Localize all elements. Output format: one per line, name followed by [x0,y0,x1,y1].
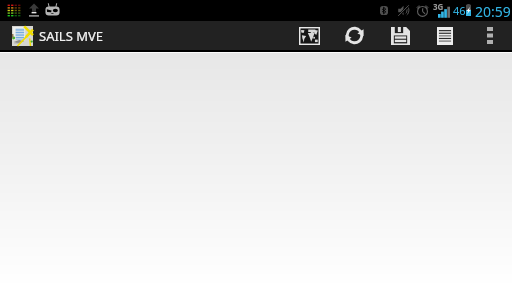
staticText: SAILS MVE [39,27,103,45]
button[interactable]: Save [378,21,423,50]
button[interactable]: Refresh [331,21,378,50]
button[interactable]: Map [288,21,331,50]
button[interactable]: Log [423,21,467,50]
staticText: 20:59 [475,2,511,21]
staticText: 46 [453,3,466,18]
button[interactable]: More options [467,21,512,50]
button[interactable]: SAILS MVE [12,26,103,46]
staticText: 3G [433,1,444,12]
